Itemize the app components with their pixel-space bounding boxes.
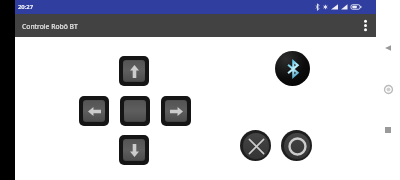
staticText: 20:27: [18, 3, 34, 11]
button[interactable]: Back: [379, 39, 397, 57]
button[interactable]: Bluetooth: [275, 51, 310, 86]
button[interactable]: Go: [281, 130, 312, 161]
button[interactable]: Recents: [379, 121, 397, 139]
button[interactable]: LEFT: [79, 96, 109, 126]
button[interactable]: NONE: [120, 96, 150, 126]
button[interactable]: UP: [119, 56, 149, 86]
button[interactable]: More options: [354, 14, 376, 37]
button[interactable]: RIGHT: [161, 96, 191, 126]
staticText: Controle Robô BT: [22, 22, 78, 31]
button[interactable]: Stop: [240, 130, 271, 161]
button[interactable]: DOWN: [119, 135, 149, 165]
button[interactable]: Home: [379, 80, 397, 98]
